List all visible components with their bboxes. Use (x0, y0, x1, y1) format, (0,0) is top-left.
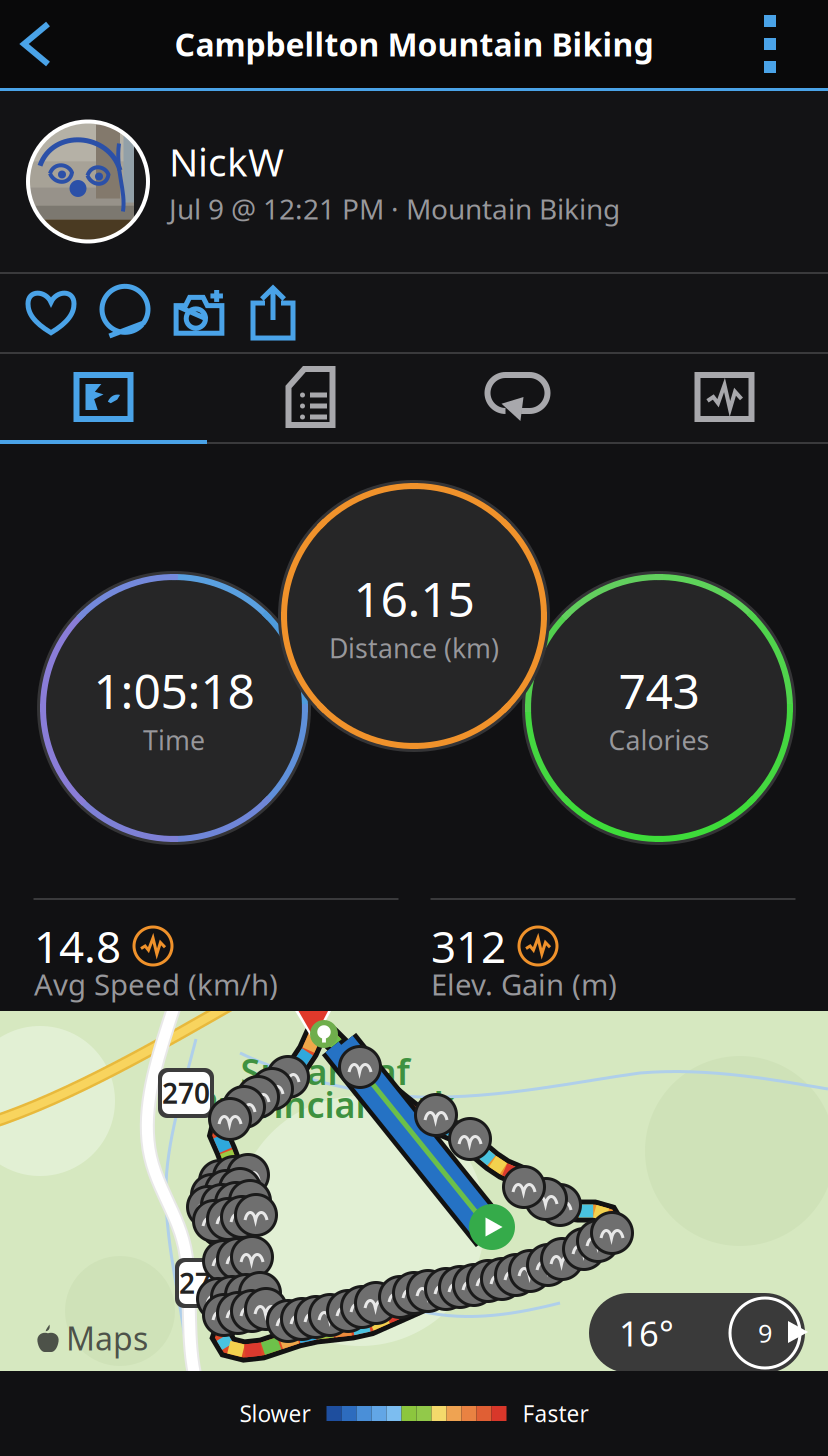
button[interactable]: Details (207, 354, 414, 440)
staticText: Avg Speed (km/h) (34, 964, 278, 1003)
button[interactable]: Laps (414, 354, 621, 440)
button[interactable]: Back (0, 0, 78, 88)
staticText: Jul 9 @ 12:21 PM · Mountain Biking (169, 190, 620, 227)
staticText: 16° (619, 1310, 674, 1356)
staticText: NickW (169, 136, 284, 187)
staticText: Maps (66, 1317, 148, 1359)
button[interactable]: Share (236, 274, 310, 352)
button[interactable]: Charts (621, 354, 828, 440)
button[interactable]: Map (0, 354, 207, 440)
staticText: Sugarloaf (240, 1047, 409, 1095)
button[interactable]: Comment (88, 274, 162, 352)
staticText: Provincial Park (195, 1080, 454, 1128)
staticText: Campbellton Mountain Biking (174, 23, 653, 65)
staticText: Time (143, 722, 205, 758)
staticText: 270 (179, 1264, 227, 1302)
staticText: Calories (608, 722, 709, 758)
staticText: 1:05:18 (93, 658, 254, 722)
button[interactable]: Add photo (162, 274, 236, 352)
staticText: Slower (239, 1398, 310, 1428)
staticText: 743 (618, 658, 699, 722)
staticText: Faster (522, 1398, 588, 1428)
staticText: 14.8 (34, 917, 121, 975)
staticText: Distance (km) (329, 630, 499, 666)
staticText: 9 (758, 1316, 772, 1350)
button[interactable]: More options (728, 0, 828, 88)
staticText: 270 (162, 1074, 210, 1112)
staticText: 16.15 (353, 566, 474, 630)
staticText: 312 (431, 917, 506, 975)
button[interactable]: Like (14, 274, 88, 352)
staticText: Elev. Gain (m) (431, 964, 617, 1003)
